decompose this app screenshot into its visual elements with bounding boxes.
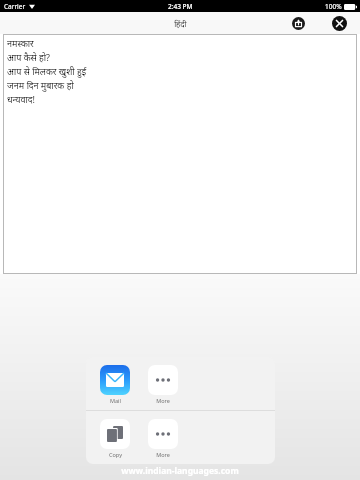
staticText: More (156, 397, 170, 404)
staticText: धन्यवाद! (7, 93, 35, 105)
button[interactable]: More (146, 419, 180, 458)
staticText: Copy (109, 451, 122, 458)
staticText: नमस्कार (7, 37, 34, 49)
staticText: आप कैसे हो? (7, 51, 51, 63)
button[interactable]: Copy (98, 419, 132, 458)
staticText: Mail (110, 397, 121, 404)
button[interactable]: More (146, 365, 180, 404)
staticText: 2:43 PM (168, 2, 193, 11)
staticText: Carrier (4, 2, 26, 11)
staticText: जनम दिन मुबारक हो (7, 79, 74, 91)
staticText: More (156, 451, 170, 458)
button[interactable]: Close (328, 12, 350, 34)
button[interactable]: Share (288, 13, 308, 33)
staticText: 100% (325, 2, 342, 11)
button[interactable]: Mail (98, 365, 132, 404)
staticText: आप से मिलकर खुशी हुई (7, 65, 87, 77)
staticText: www.indian-languages.com (121, 465, 239, 477)
button[interactable]: नमस्कार (3, 34, 357, 274)
staticText: हिंदी (174, 18, 187, 29)
